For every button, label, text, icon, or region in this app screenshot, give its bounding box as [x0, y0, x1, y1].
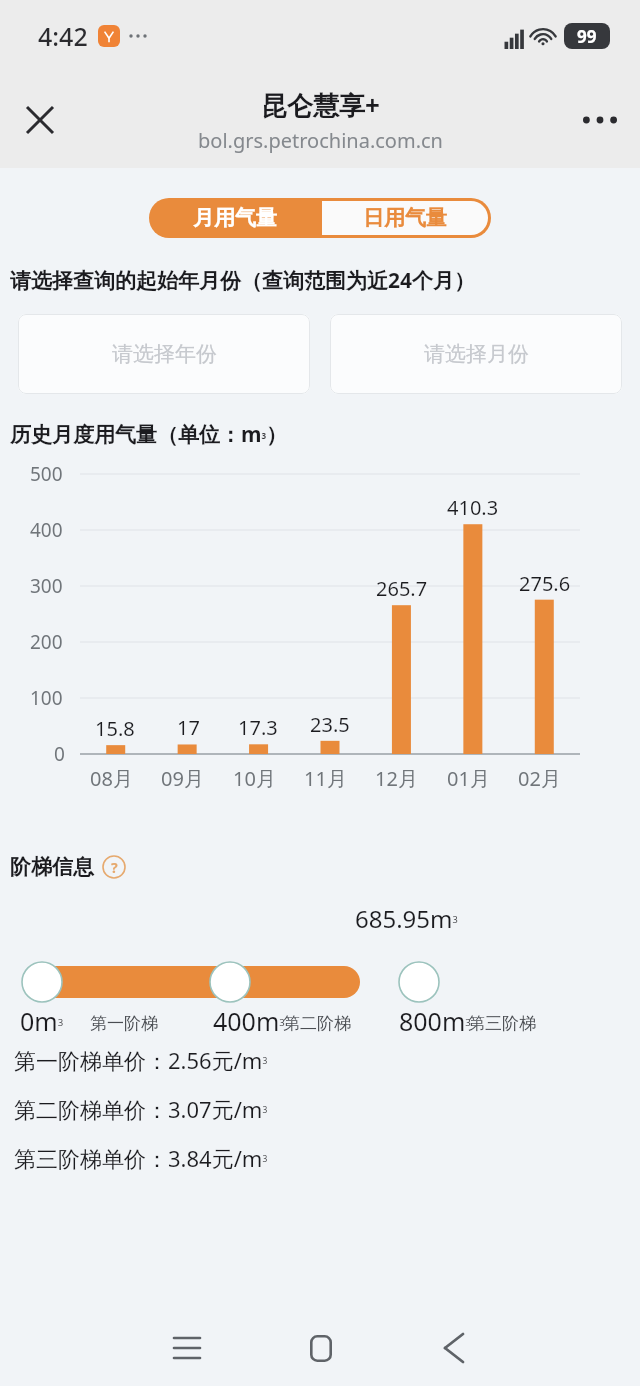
staticText: 15.8	[95, 715, 135, 742]
staticText: 265.7	[376, 575, 428, 602]
button[interactable]: Back	[387, 1310, 520, 1386]
staticText: 月用气量	[193, 205, 277, 231]
staticText: 第三阶梯	[468, 1013, 536, 1034]
staticText: 请选择月份	[424, 341, 529, 367]
staticText: 日用气量	[363, 205, 447, 231]
staticText: 第二阶梯单价：3.07元/m3	[14, 1094, 268, 1124]
staticText: 0	[54, 741, 65, 767]
staticText: 17.3	[238, 714, 278, 741]
staticText: 02月	[518, 765, 561, 792]
staticText: 第二阶梯	[283, 1013, 351, 1034]
staticText: 23.5	[310, 711, 350, 738]
button[interactable]: 阶梯信息	[10, 854, 126, 880]
staticText: 4:42	[38, 19, 88, 53]
staticText: 昆仑慧享+	[261, 87, 380, 123]
button[interactable]: Home	[254, 1310, 387, 1386]
staticText: 请选择年份	[112, 341, 217, 367]
staticText: 历史月度用气量（单位：m3）	[10, 420, 288, 449]
staticText: 800m3	[399, 1004, 471, 1038]
button[interactable]: Close	[14, 94, 66, 146]
staticText: 685.95m3	[355, 902, 458, 935]
button[interactable]: More options	[574, 94, 626, 146]
staticText: 200	[30, 629, 63, 655]
staticText: 第一阶梯单价：2.56元/m3	[14, 1045, 268, 1075]
staticText: 01月	[447, 765, 490, 792]
button[interactable]: 月用气量	[149, 198, 320, 238]
staticText: 500	[30, 461, 63, 487]
staticText: 11月	[304, 765, 347, 792]
staticText: 99	[577, 25, 597, 48]
staticText: 300	[30, 573, 63, 599]
button[interactable]: 日用气量	[322, 201, 488, 235]
staticText: 275.6	[519, 570, 571, 597]
staticText: 400m3	[213, 1004, 285, 1038]
staticText: 第一阶梯	[90, 1013, 158, 1034]
button[interactable]: 请选择月份	[330, 314, 622, 394]
staticText: 阶梯信息	[10, 854, 94, 880]
staticText: 0m3	[20, 1004, 64, 1038]
staticText: ?	[111, 858, 118, 877]
button[interactable]: Recent apps	[120, 1310, 254, 1386]
staticText: 12月	[375, 765, 418, 792]
button[interactable]: 请选择年份	[18, 314, 310, 394]
staticText: 第三阶梯单价：3.84元/m3	[14, 1143, 268, 1173]
staticText: 410.3	[447, 494, 499, 521]
other: Help	[102, 855, 126, 879]
staticText: 400	[30, 517, 63, 543]
staticText: bol.grs.petrochina.com.cn	[198, 127, 443, 154]
staticText: 08月	[90, 765, 133, 792]
staticText: 10月	[233, 765, 276, 792]
staticText: 17	[177, 714, 200, 741]
staticText: 请选择查询的起始年月份（查询范围为近24个月）	[10, 266, 476, 295]
staticText: 09月	[161, 765, 204, 792]
staticText: 100	[30, 685, 63, 711]
